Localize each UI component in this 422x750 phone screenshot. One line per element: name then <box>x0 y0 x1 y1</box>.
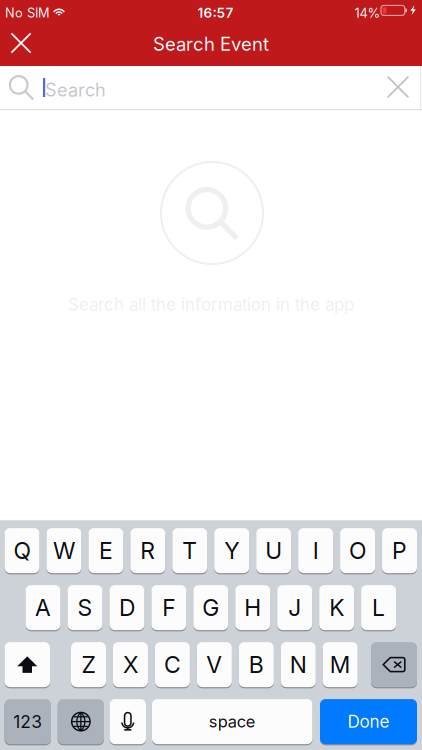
button[interactable]: Z <box>71 641 106 688</box>
button[interactable]: Delete <box>371 641 417 688</box>
button[interactable]: K <box>319 584 354 631</box>
staticText: I <box>313 537 319 564</box>
button[interactable]: G <box>193 584 228 631</box>
staticText: Y <box>224 537 239 564</box>
button[interactable]: I <box>298 527 333 574</box>
button[interactable]: Shift <box>4 641 50 688</box>
staticText: S <box>77 594 92 621</box>
button[interactable]: S <box>67 584 102 631</box>
button[interactable]: A <box>25 584 60 631</box>
staticText: K <box>329 594 344 621</box>
button[interactable]: J <box>277 584 312 631</box>
button[interactable]: D <box>109 584 144 631</box>
staticText: M <box>330 651 351 678</box>
staticText: V <box>206 651 222 678</box>
button[interactable]: C <box>155 641 190 688</box>
button[interactable]: W <box>46 527 81 574</box>
staticText: space <box>209 712 256 731</box>
staticText: T <box>182 537 197 564</box>
button[interactable]: B <box>239 641 274 688</box>
button[interactable]: N <box>281 641 316 688</box>
staticText: O <box>349 537 366 564</box>
staticText: Search <box>45 79 106 101</box>
staticText: Search all the information in the app <box>68 294 354 315</box>
button[interactable]: T <box>172 527 207 574</box>
staticText: 16:57 <box>197 5 233 21</box>
button[interactable]: H <box>235 584 270 631</box>
staticText: P <box>392 537 407 564</box>
button[interactable]: L <box>361 584 396 631</box>
button[interactable]: Y <box>214 527 249 574</box>
button[interactable]: Q <box>4 527 39 574</box>
staticText: Q <box>13 537 30 564</box>
button[interactable]: R <box>130 527 165 574</box>
button[interactable]: Dictate <box>109 698 146 745</box>
button[interactable]: X <box>113 641 148 688</box>
staticText: X <box>123 651 138 678</box>
button[interactable]: Next keyboard <box>58 698 104 745</box>
staticText: J <box>288 594 301 621</box>
staticText: H <box>244 594 261 621</box>
button[interactable]: Numbers <box>4 698 51 745</box>
button[interactable]: M <box>323 641 358 688</box>
staticText: R <box>140 537 155 564</box>
button[interactable]: U <box>256 527 291 574</box>
staticText: N <box>290 651 307 678</box>
button[interactable]: Close <box>0 22 42 64</box>
button[interactable]: E <box>88 527 123 574</box>
staticText: 14% <box>354 5 380 21</box>
staticText: W <box>53 537 75 564</box>
button[interactable]: Done <box>320 698 417 745</box>
staticText: G <box>202 594 219 621</box>
button[interactable]: F <box>151 584 186 631</box>
staticText: U <box>265 537 282 564</box>
button[interactable]: O <box>340 527 375 574</box>
staticText: Z <box>81 651 95 678</box>
button[interactable]: P <box>382 527 417 574</box>
button[interactable]: Clear text <box>377 66 419 108</box>
staticText: A <box>35 594 51 621</box>
button[interactable]: space <box>152 698 312 745</box>
staticText: F <box>162 594 175 621</box>
staticText: D <box>119 594 135 621</box>
staticText: C <box>164 651 181 678</box>
button[interactable]: V <box>197 641 232 688</box>
staticText: B <box>249 651 264 678</box>
staticText: 123 <box>13 711 42 732</box>
staticText: L <box>372 594 385 621</box>
staticText: E <box>99 537 113 564</box>
staticText: Search Event <box>153 33 269 55</box>
staticText: Done <box>347 711 389 732</box>
staticText: No SIM <box>5 5 50 21</box>
